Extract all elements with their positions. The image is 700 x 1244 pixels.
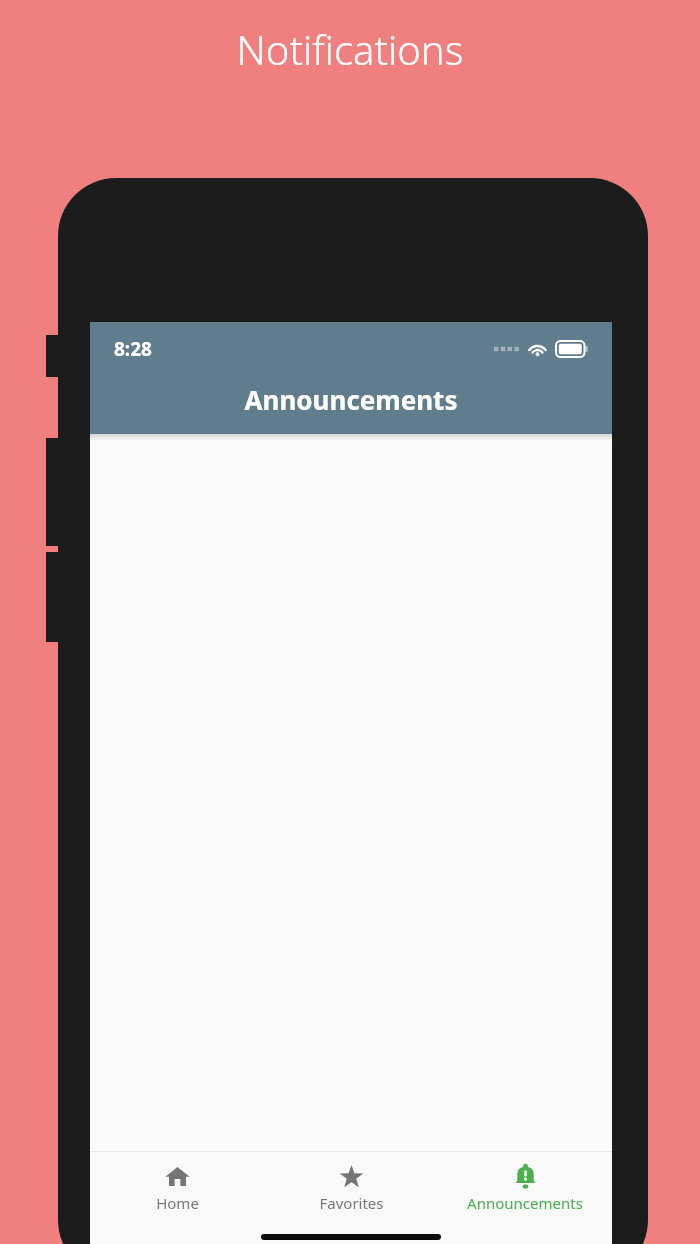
staticText: Announcements xyxy=(467,1193,583,1213)
staticText: Notifications xyxy=(0,22,700,76)
staticText: 8:28 xyxy=(114,336,152,362)
button[interactable]: Favorites xyxy=(264,1152,438,1230)
button[interactable]: Home xyxy=(90,1152,264,1230)
staticText: Favorites xyxy=(319,1193,384,1213)
staticText: Announcements xyxy=(90,382,612,417)
button[interactable]: Announcements xyxy=(438,1152,612,1230)
staticText: Home xyxy=(156,1193,199,1213)
